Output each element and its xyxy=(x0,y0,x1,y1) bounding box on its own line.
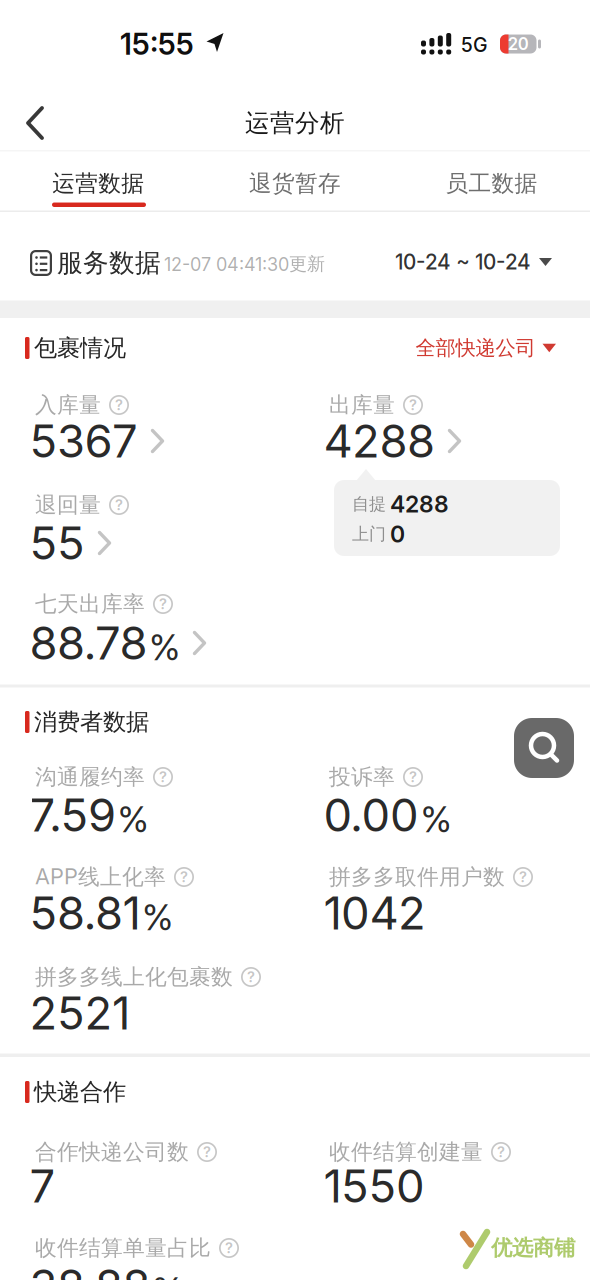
button[interactable]: 4288 xyxy=(323,414,461,468)
staticText: ? xyxy=(159,595,167,613)
staticText: 服务数据 xyxy=(57,247,161,279)
staticText: 退回量 xyxy=(35,491,101,519)
staticText: 5367 xyxy=(29,414,138,468)
button[interactable]: 55 xyxy=(29,516,111,570)
staticText: 出库量 xyxy=(329,391,395,419)
staticText: 2521 xyxy=(29,986,130,1040)
staticText: 7.59 xyxy=(29,788,116,842)
staticText: ? xyxy=(115,496,123,514)
staticText: 38.88 xyxy=(29,1259,150,1280)
staticText: 合作快递公司数 xyxy=(35,1138,189,1166)
staticText: 7 xyxy=(29,1159,55,1213)
staticText: 12-07 04:41:30更新 xyxy=(164,253,325,275)
staticText: 入库量 xyxy=(35,391,101,419)
staticText: 20 xyxy=(508,34,529,54)
staticText: 包裹情况 xyxy=(34,333,126,363)
staticText: 沟通履约率 xyxy=(35,763,145,791)
staticText: ? xyxy=(180,868,188,886)
staticText: % xyxy=(149,626,180,669)
staticText: ? xyxy=(225,1239,233,1257)
staticText: ? xyxy=(409,396,417,414)
button[interactable]: 10-24 ~ 10-24 xyxy=(395,249,552,274)
staticText: ? xyxy=(497,1143,505,1161)
staticText: 15:55 xyxy=(120,26,194,62)
staticText: 4288 xyxy=(390,490,449,518)
staticText: ? xyxy=(247,968,255,986)
staticText: 收件结算单量占比 xyxy=(35,1234,211,1262)
button[interactable]: 员工数据 xyxy=(393,154,590,212)
staticText: 10-24 ~ 10-24 xyxy=(395,249,531,274)
staticText: ? xyxy=(159,768,167,786)
staticText: 自提 xyxy=(352,493,386,515)
button[interactable]: 全部快递公司 xyxy=(415,335,556,361)
staticText: APP线上化率 xyxy=(35,863,166,891)
staticText: 优选商铺 xyxy=(491,1235,575,1261)
staticText: 运营分析 xyxy=(245,107,345,138)
staticText: 七天出库率 xyxy=(35,590,145,618)
staticText: 拼多多取件用户数 xyxy=(329,863,505,891)
staticText: % xyxy=(117,798,148,841)
staticText: 1042 xyxy=(323,886,426,940)
button[interactable]: 搜索 xyxy=(514,718,574,778)
staticText: ? xyxy=(519,868,527,886)
staticText: 5G xyxy=(461,33,488,57)
staticText: 4288 xyxy=(323,414,435,468)
staticText: % xyxy=(142,896,173,939)
staticText: 收件结算创建量 xyxy=(329,1138,483,1166)
staticText: 全部快递公司 xyxy=(415,335,535,361)
staticText: ? xyxy=(409,768,417,786)
staticText: 拼多多线上化包裹数 xyxy=(35,963,233,991)
staticText: 员工数据 xyxy=(445,169,537,198)
staticText: ? xyxy=(203,1143,211,1161)
staticText: 58.81 xyxy=(29,886,140,940)
staticText: 88.78 xyxy=(29,616,147,670)
staticText: 退货暂存 xyxy=(249,169,341,198)
button[interactable]: 5367 xyxy=(29,414,164,468)
button[interactable]: 退货暂存 xyxy=(197,154,393,212)
staticText: ? xyxy=(115,396,123,414)
staticText: 快递合作 xyxy=(34,1077,126,1107)
staticText: 0 xyxy=(390,520,405,548)
staticText: 上门 xyxy=(352,523,386,545)
staticText: 投诉率 xyxy=(329,763,395,791)
staticText: % xyxy=(152,1269,183,1280)
staticText: 55 xyxy=(29,516,85,570)
staticText: 消费者数据 xyxy=(34,707,149,737)
button[interactable]: 返回 xyxy=(16,100,55,146)
staticText: 1550 xyxy=(323,1159,425,1213)
staticText: 0.00 xyxy=(323,788,419,842)
staticText: % xyxy=(420,798,451,841)
button[interactable]: 88.78 xyxy=(29,616,206,670)
staticText: 运营数据 xyxy=(52,169,144,198)
button[interactable]: 运营数据 xyxy=(0,154,197,212)
